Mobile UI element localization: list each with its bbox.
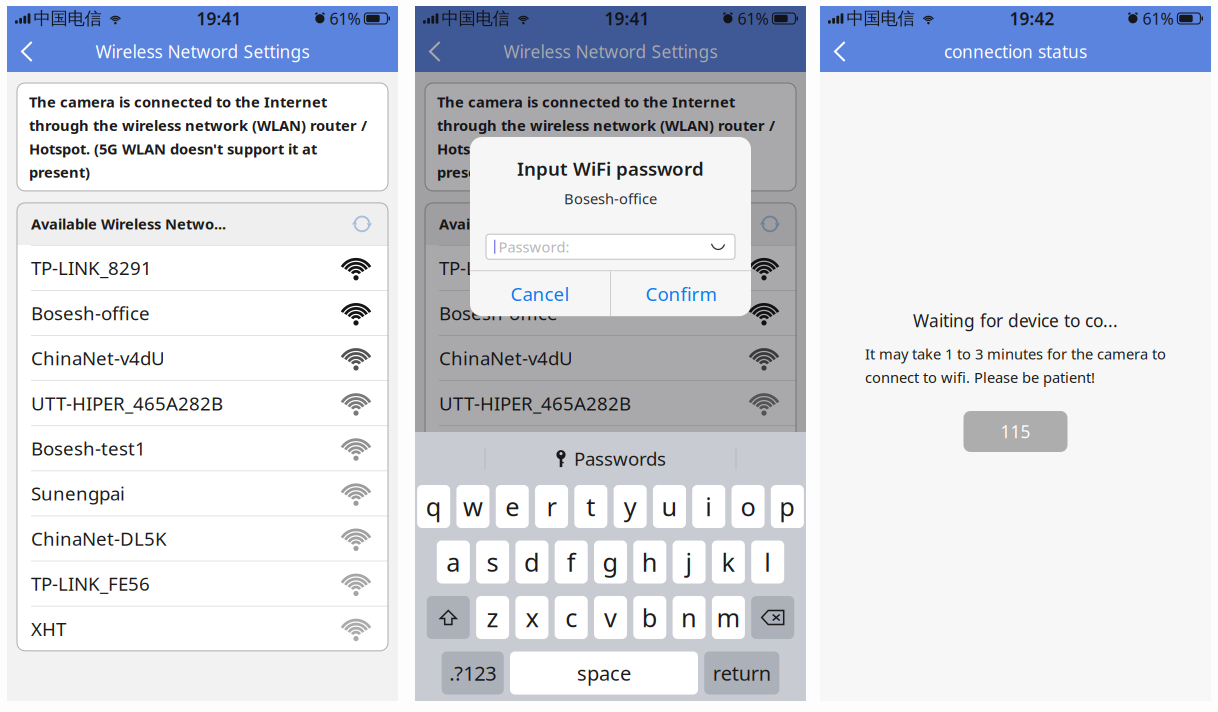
button[interactable]: d	[515, 540, 548, 583]
staticText: Bosesh-office	[564, 189, 657, 208]
staticText: y	[624, 490, 637, 523]
button[interactable]: TP-LINK_FE56	[17, 561, 388, 606]
button[interactable]: n	[673, 596, 706, 639]
staticText: r	[547, 490, 557, 523]
button[interactable]: y	[614, 485, 647, 528]
button[interactable]: Bosesh-office	[17, 291, 388, 335]
button[interactable]: x	[515, 596, 548, 639]
staticText: 中国电信	[846, 8, 914, 29]
staticText: x	[525, 601, 538, 634]
staticText: 61%	[737, 8, 768, 29]
button[interactable]: Sunengpai	[17, 471, 388, 515]
button[interactable]: j	[673, 540, 706, 583]
button[interactable]: e	[496, 485, 529, 528]
staticText: 19:41	[196, 7, 241, 30]
staticText: Bosesh-office	[31, 301, 150, 325]
staticText: through the wireless network (WLAN) rout…	[437, 115, 775, 135]
button[interactable]: ChinaNet-v4dU	[17, 336, 388, 380]
button[interactable]: space	[510, 651, 698, 694]
staticText: t	[586, 490, 595, 523]
button[interactable]: s	[476, 540, 509, 583]
button[interactable]	[427, 596, 470, 639]
staticText: UTT-HIPER_465A282B	[439, 391, 631, 416]
button[interactable]: p	[771, 485, 804, 528]
button[interactable]: Back	[415, 31, 455, 72]
button[interactable]: k	[712, 540, 745, 583]
button[interactable]: Confirm	[611, 271, 751, 316]
staticText: XHT	[439, 616, 474, 641]
staticText: p	[779, 490, 795, 523]
button[interactable]: m	[712, 596, 745, 639]
button[interactable]: Bosesh-test1	[425, 426, 796, 470]
staticText: f	[567, 545, 576, 579]
button[interactable]: c	[555, 596, 588, 639]
staticText: g	[602, 545, 618, 579]
button[interactable]: TP-LINK_8291	[425, 246, 796, 290]
button[interactable]: Sunengpai	[425, 471, 796, 515]
staticText: It may take 1 to 3 minutes for the camer…	[865, 344, 1166, 363]
button[interactable]: g	[594, 540, 627, 583]
staticText: u	[661, 490, 677, 523]
staticText: w	[463, 490, 483, 523]
button[interactable]: Refresh	[759, 213, 781, 235]
button[interactable]: Refresh	[351, 213, 373, 235]
staticText: Bosesh-office	[439, 301, 558, 325]
button[interactable]: b	[633, 596, 666, 639]
staticText: TP-LINK_FE56	[439, 571, 558, 596]
button[interactable]: t	[574, 485, 607, 528]
button[interactable]: UTT-HIPER_465A282B	[425, 381, 796, 425]
staticText: s	[487, 545, 499, 579]
staticText: l	[764, 545, 771, 579]
button[interactable]: l	[751, 540, 784, 583]
button[interactable]: o	[732, 485, 765, 528]
button[interactable]: h	[633, 540, 666, 583]
button[interactable]: TP-LINK_FE56	[425, 561, 796, 606]
button[interactable]	[751, 596, 794, 639]
staticText: connection status	[944, 40, 1087, 63]
button[interactable]: ChinaNet-v4dU	[425, 336, 796, 380]
button[interactable]: ChinaNet-DL5K	[425, 516, 796, 561]
staticText: TP-LINK_8291	[31, 255, 152, 280]
staticText: 61%	[329, 8, 360, 29]
button[interactable]: w	[456, 485, 489, 528]
staticText: v	[604, 601, 617, 634]
button[interactable]: Passwords	[555, 446, 666, 471]
button[interactable]: 115	[963, 411, 1067, 452]
button[interactable]: .?123	[442, 651, 504, 694]
staticText: Waiting for device to co...	[913, 309, 1118, 332]
staticText: z	[487, 601, 499, 634]
staticText: j	[686, 545, 693, 579]
staticText: Passwords	[574, 446, 666, 471]
staticText: Hotspot. (5G WLAN doesn't support it at	[437, 139, 725, 158]
button[interactable]: r	[535, 485, 568, 528]
button[interactable]: Back	[820, 31, 860, 72]
staticText: 115	[1000, 420, 1030, 443]
button[interactable]: q	[417, 485, 450, 528]
button[interactable]: Bosesh-office	[425, 291, 796, 335]
button[interactable]: i	[692, 485, 725, 528]
staticText: Wireless Netword Settings	[95, 40, 309, 63]
button[interactable]: return	[704, 651, 779, 694]
staticText: Input WiFi password	[517, 156, 704, 181]
button[interactable]: v	[594, 596, 627, 639]
button[interactable]: TP-LINK_8291	[17, 246, 388, 290]
button[interactable]: XHT	[17, 606, 388, 651]
button[interactable]: XHT	[425, 606, 796, 651]
button[interactable]: u	[653, 485, 686, 528]
staticText: Hotspot. (5G WLAN doesn't support it at	[29, 139, 317, 158]
button[interactable]: f	[555, 540, 588, 583]
button[interactable]: Back	[7, 31, 47, 72]
staticText: m	[716, 601, 740, 634]
staticText: k	[721, 545, 735, 579]
button[interactable]: ChinaNet-DL5K	[17, 516, 388, 561]
button[interactable]: Bosesh-test1	[17, 426, 388, 470]
staticText: o	[741, 490, 756, 523]
button[interactable]: a	[437, 540, 470, 583]
staticText: Sunengpai	[439, 481, 533, 506]
button[interactable]: Cancel	[470, 271, 610, 316]
staticText: The camera is connected to the Internet	[29, 92, 327, 111]
button[interactable]: UTT-HIPER_465A282B	[17, 381, 388, 425]
staticText: ChinaNet-DL5K	[31, 526, 167, 551]
button[interactable]: z	[476, 596, 509, 639]
